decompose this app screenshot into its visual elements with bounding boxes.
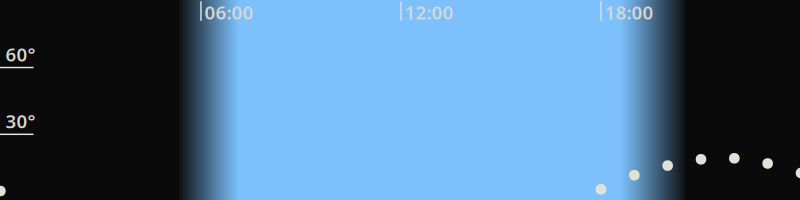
staticText: 12:00 bbox=[404, 0, 453, 25]
button[interactable]: Hourly temperature chart bbox=[0, 0, 800, 200]
staticText: 06:00 bbox=[204, 0, 253, 25]
staticText: 18:00 bbox=[604, 0, 653, 25]
staticText: 60° bbox=[5, 42, 35, 67]
staticText: 30° bbox=[5, 109, 35, 133]
